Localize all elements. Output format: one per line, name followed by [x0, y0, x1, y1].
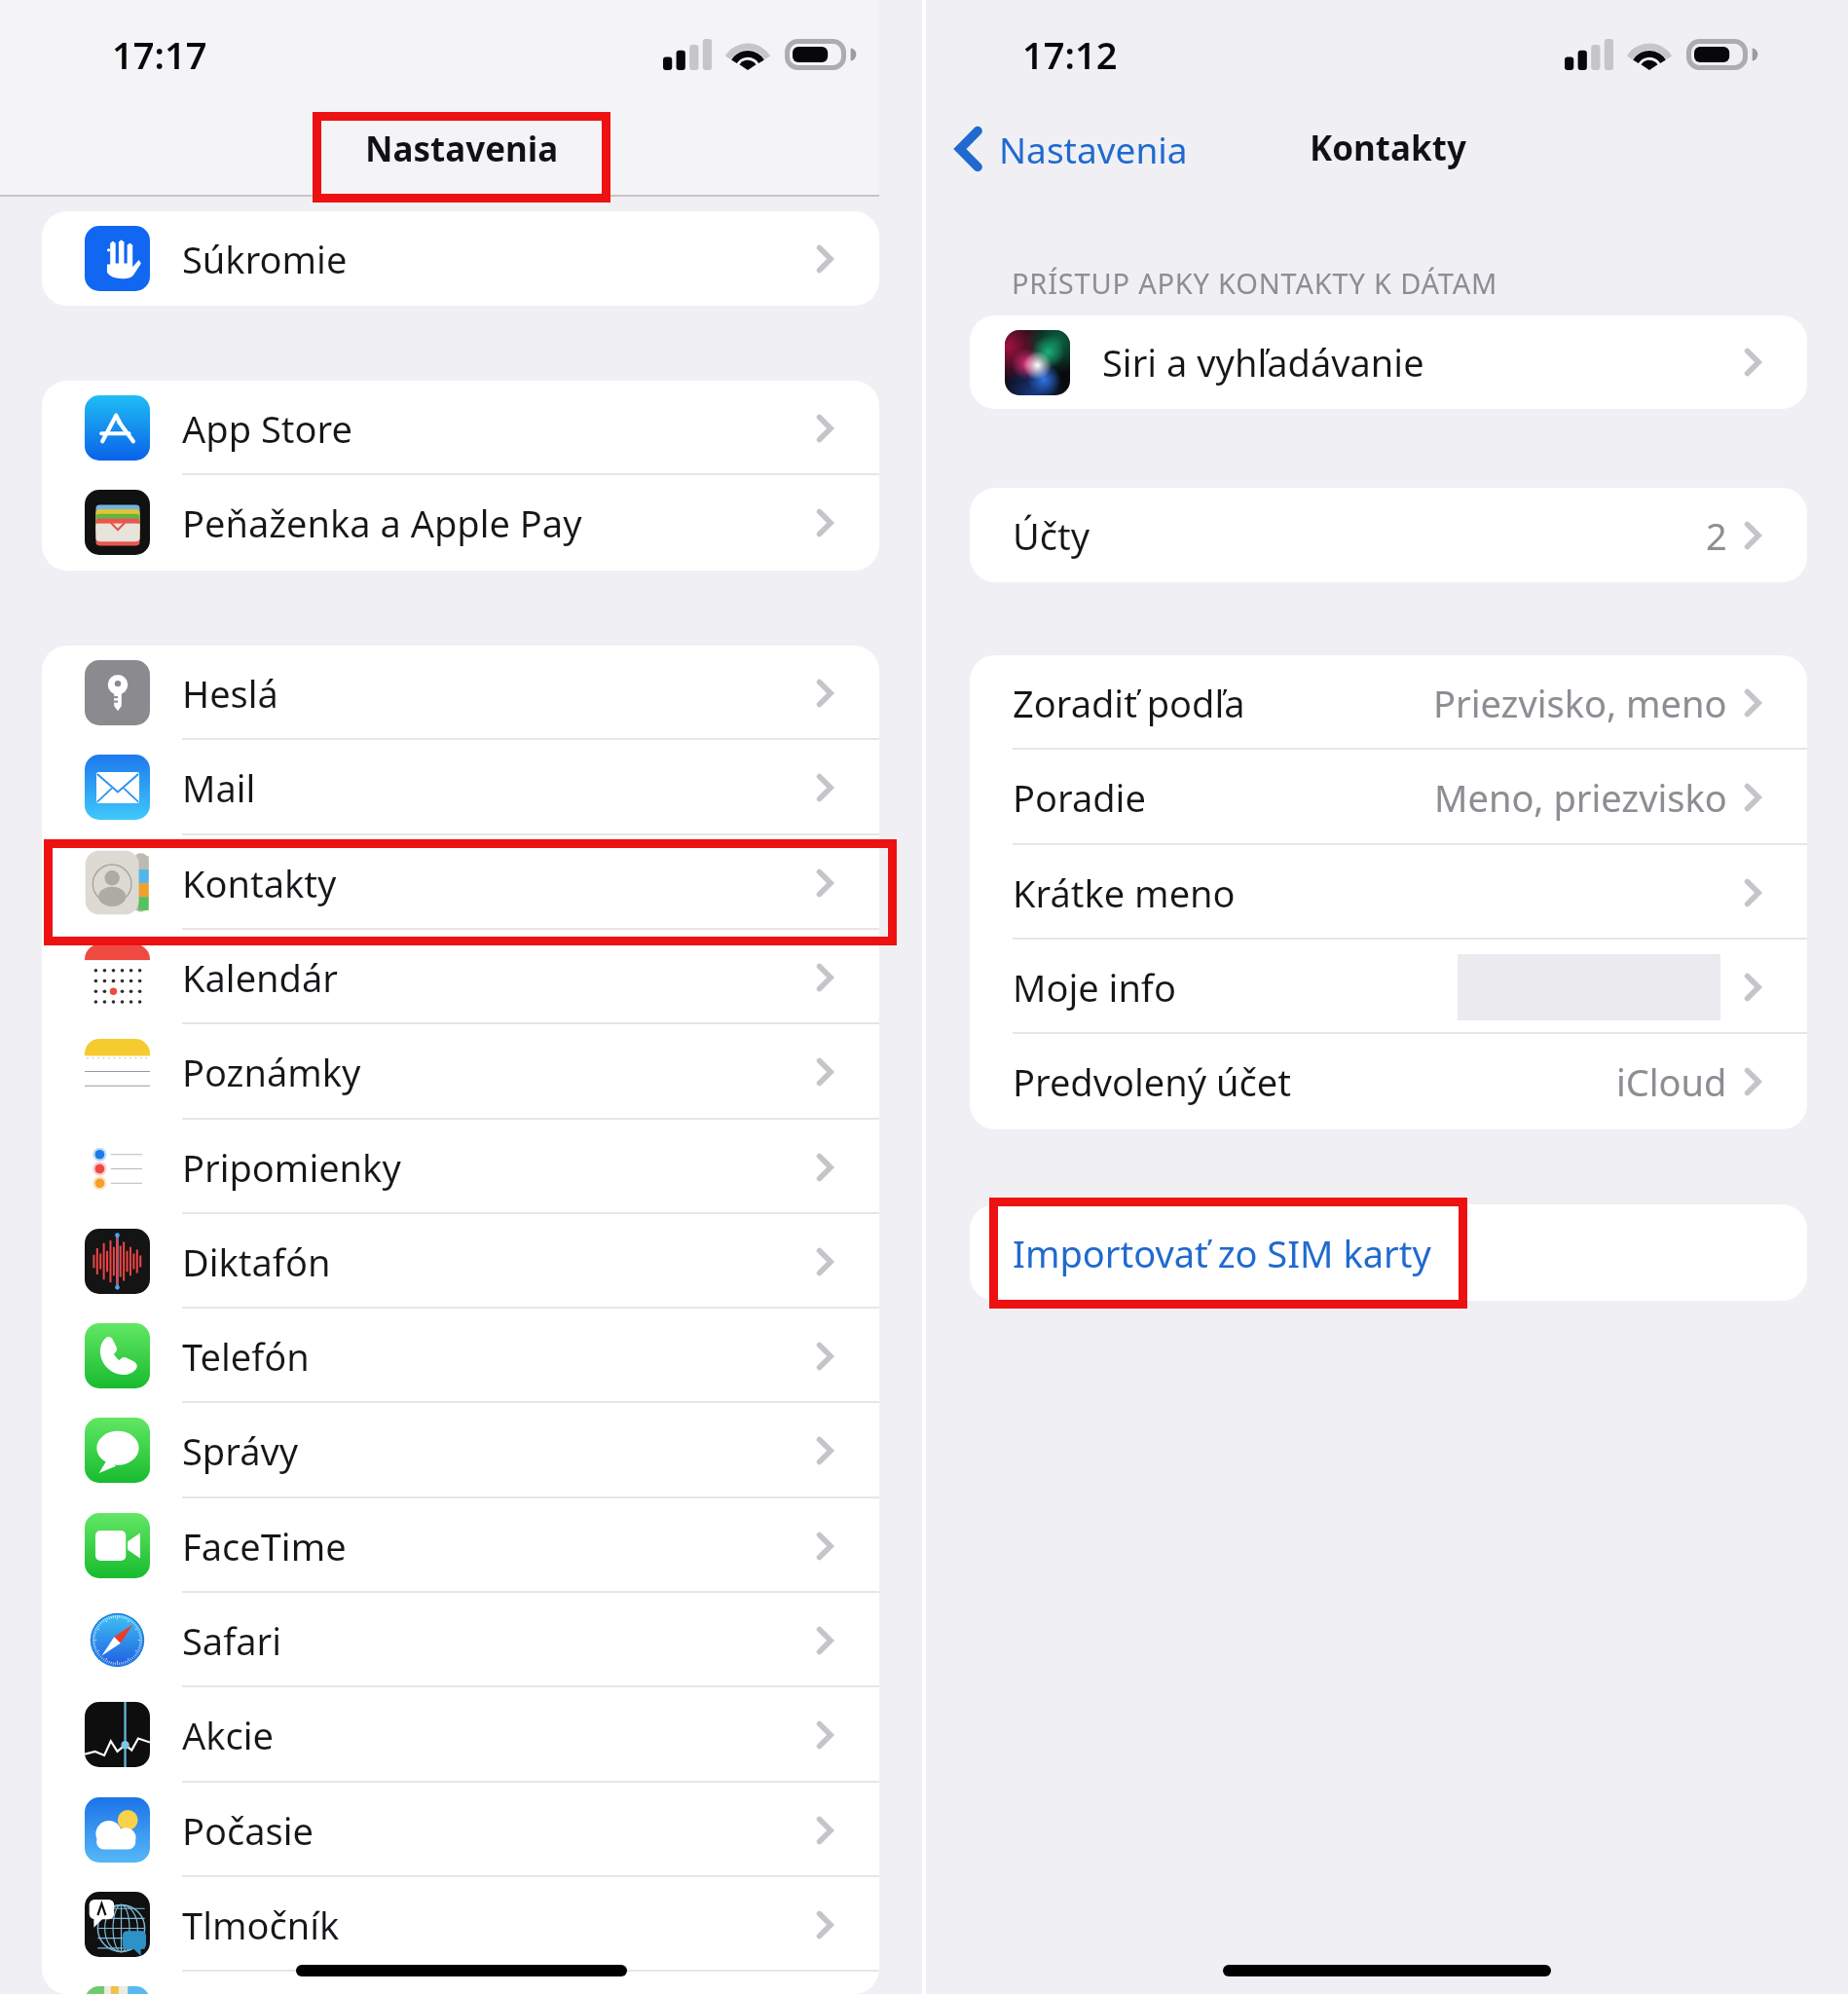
staticText: Safari — [182, 1615, 282, 1666]
staticText: Súkromie — [182, 234, 348, 284]
staticText: Priezvisko, meno — [1433, 678, 1727, 728]
staticText: Importovať zo SIM karty — [1013, 1228, 1431, 1278]
button[interactable]: Diktafón — [42, 1214, 879, 1309]
staticText: FaceTime — [182, 1521, 347, 1571]
staticText: Meno, priezvisko — [1434, 772, 1727, 823]
button[interactable]: Importovať zo SIM karty — [970, 1204, 1807, 1301]
staticText: 17:12 — [1022, 29, 1118, 80]
button[interactable]: Počasie — [42, 1783, 879, 1877]
staticText: 17:17 — [112, 29, 207, 80]
button[interactable]: Back to Nastavenia — [949, 117, 1196, 181]
staticText: Správy — [182, 1425, 299, 1476]
button[interactable]: FaceTime — [42, 1498, 879, 1593]
button[interactable]: Predvolený účet — [970, 1034, 1807, 1128]
staticText: Predvolený účet — [1013, 1056, 1291, 1107]
button[interactable]: Účty — [970, 488, 1807, 582]
staticText: Poradie — [1013, 772, 1146, 823]
staticText: Nastavenia — [365, 126, 559, 172]
button[interactable]: Kontakty — [1310, 125, 1466, 171]
button[interactable]: Akcie — [42, 1687, 879, 1782]
button[interactable]: Tlmočník — [42, 1877, 879, 1972]
button[interactable]: Krátke meno — [970, 845, 1807, 940]
button[interactable]: Kalendár — [42, 930, 879, 1024]
button[interactable]: Súkromie — [42, 211, 879, 306]
staticText: Poznámky — [182, 1047, 361, 1097]
staticText: PRÍSTUP APKY KONTAKTY K DÁTAM — [1012, 264, 1498, 302]
button[interactable]: Mail — [42, 740, 879, 834]
staticText: Heslá — [182, 668, 278, 719]
button[interactable]: Siri a vyhľadávanie — [970, 315, 1807, 409]
staticText: App Store — [182, 403, 352, 454]
button[interactable]: Heslá — [42, 646, 879, 740]
staticText: Tlmočník — [182, 1900, 340, 1950]
button[interactable]: Moje info — [970, 940, 1807, 1034]
staticText: 2 — [1706, 510, 1727, 561]
staticText: Kontakty — [182, 858, 337, 908]
staticText: iCloud — [1616, 1056, 1727, 1107]
staticText: Účty — [1013, 510, 1090, 561]
button[interactable]: Peňaženka a Apple Pay — [42, 475, 879, 570]
staticText: Peňaženka a Apple Pay — [182, 498, 582, 548]
staticText: Počasie — [182, 1805, 314, 1856]
button[interactable]: Zoradiť podľa — [970, 655, 1807, 750]
staticText: Kalendár — [182, 952, 338, 1003]
button[interactable]: Správy — [42, 1403, 879, 1497]
staticText: Zoradiť podľa — [1013, 678, 1245, 728]
button[interactable]: Kontakty — [42, 835, 879, 930]
staticText: Krátke meno — [1013, 868, 1236, 918]
staticText: Mail — [182, 762, 256, 813]
button[interactable]: Safari — [42, 1593, 879, 1687]
staticText: Diktafón — [182, 1237, 331, 1287]
button[interactable]: Mapy — [42, 1972, 879, 1994]
staticText: Moje info — [1013, 962, 1176, 1013]
button[interactable]: Poznámky — [42, 1024, 879, 1119]
button[interactable]: Nastavenia — [365, 126, 559, 172]
button[interactable]: Poradie — [970, 750, 1807, 844]
staticText: Nastavenia — [999, 125, 1188, 173]
staticText: Pripomienky — [182, 1142, 401, 1193]
button[interactable]: Pripomienky — [42, 1120, 879, 1214]
button[interactable]: Telefón — [42, 1309, 879, 1403]
staticText: Akcie — [182, 1710, 275, 1760]
button[interactable]: App Store — [42, 381, 879, 475]
staticText: Kontakty — [1310, 125, 1466, 171]
staticText: Telefón — [182, 1331, 310, 1382]
staticText: Siri a vyhľadávanie — [1102, 337, 1424, 388]
